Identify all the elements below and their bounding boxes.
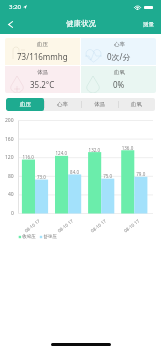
button[interactable]: 血氧 [81, 66, 156, 93]
staticText: 健康状况 [66, 19, 96, 28]
button[interactable]: 体温 [81, 98, 118, 111]
staticText: 0次/分 [107, 51, 131, 62]
staticText: 血氧 [131, 101, 142, 108]
button[interactable]: 心率 [44, 98, 81, 111]
staticText: 血氧 [114, 69, 125, 76]
button[interactable]: 心率 [81, 38, 156, 65]
button[interactable]: 测量 [143, 21, 154, 28]
staticText: 73/116mmhg [17, 51, 68, 62]
button[interactable]: 血压 [5, 38, 80, 65]
staticText: 测量 [143, 21, 154, 28]
staticText: 血压 [37, 41, 48, 48]
staticText: 体温 [37, 69, 48, 76]
button[interactable]: Back [0, 14, 20, 34]
button[interactable]: 血压 [6, 98, 44, 111]
button[interactable]: 血氧 [118, 98, 155, 111]
staticText: 体温 [94, 101, 105, 108]
staticText: 3:20 [9, 3, 21, 11]
staticText: 0% [113, 79, 125, 90]
button[interactable]: 体温 [5, 66, 80, 93]
staticText: 心率 [114, 41, 125, 48]
staticText: 心率 [57, 101, 68, 108]
staticText: 35.2°C [30, 79, 55, 90]
staticText: 血压 [20, 101, 31, 108]
